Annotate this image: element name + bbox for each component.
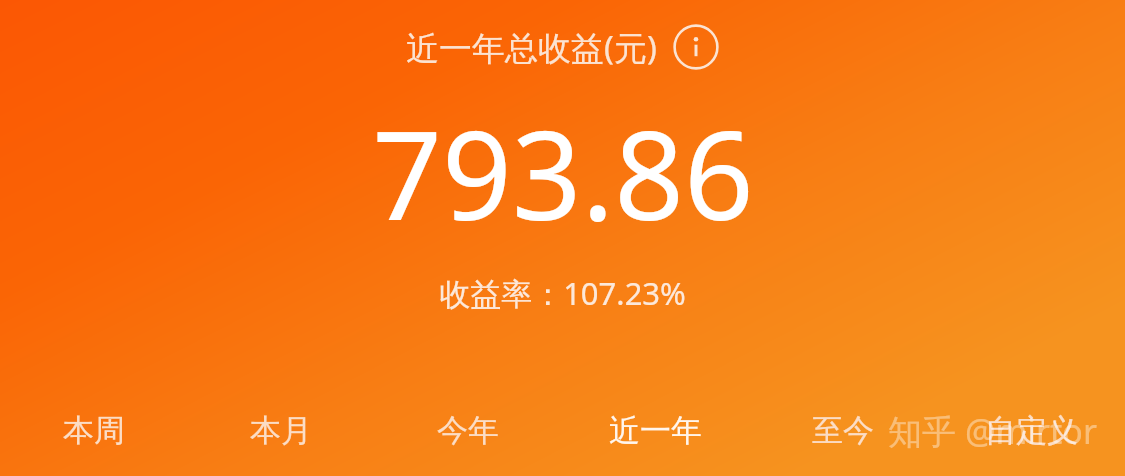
staticText: 本月 <box>250 411 312 450</box>
staticText: 知乎 @mirtor <box>888 408 1097 454</box>
staticText: 近一年总收益(元) <box>406 25 657 70</box>
button[interactable]: 本月 <box>187 385 374 476</box>
staticText: 自定义 <box>985 411 1078 450</box>
button[interactable]: 近一年 <box>561 385 749 476</box>
button[interactable]: 近一年总收益(元) <box>402 22 723 72</box>
button[interactable]: 今年 <box>374 385 561 476</box>
staticText: 至今 <box>812 411 874 450</box>
staticText: 近一年 <box>609 411 702 450</box>
staticText: 收益率：107.23% <box>439 272 686 314</box>
button[interactable]: 自定义 <box>937 385 1125 476</box>
staticText: 今年 <box>437 411 499 450</box>
staticText: 793.86 <box>372 90 754 256</box>
staticText: 本周 <box>63 411 125 450</box>
button[interactable]: 至今 <box>749 385 937 476</box>
button[interactable]: 793.86 <box>372 90 754 256</box>
button[interactable]: Info <box>673 24 719 70</box>
button[interactable]: 本周 <box>0 385 187 476</box>
